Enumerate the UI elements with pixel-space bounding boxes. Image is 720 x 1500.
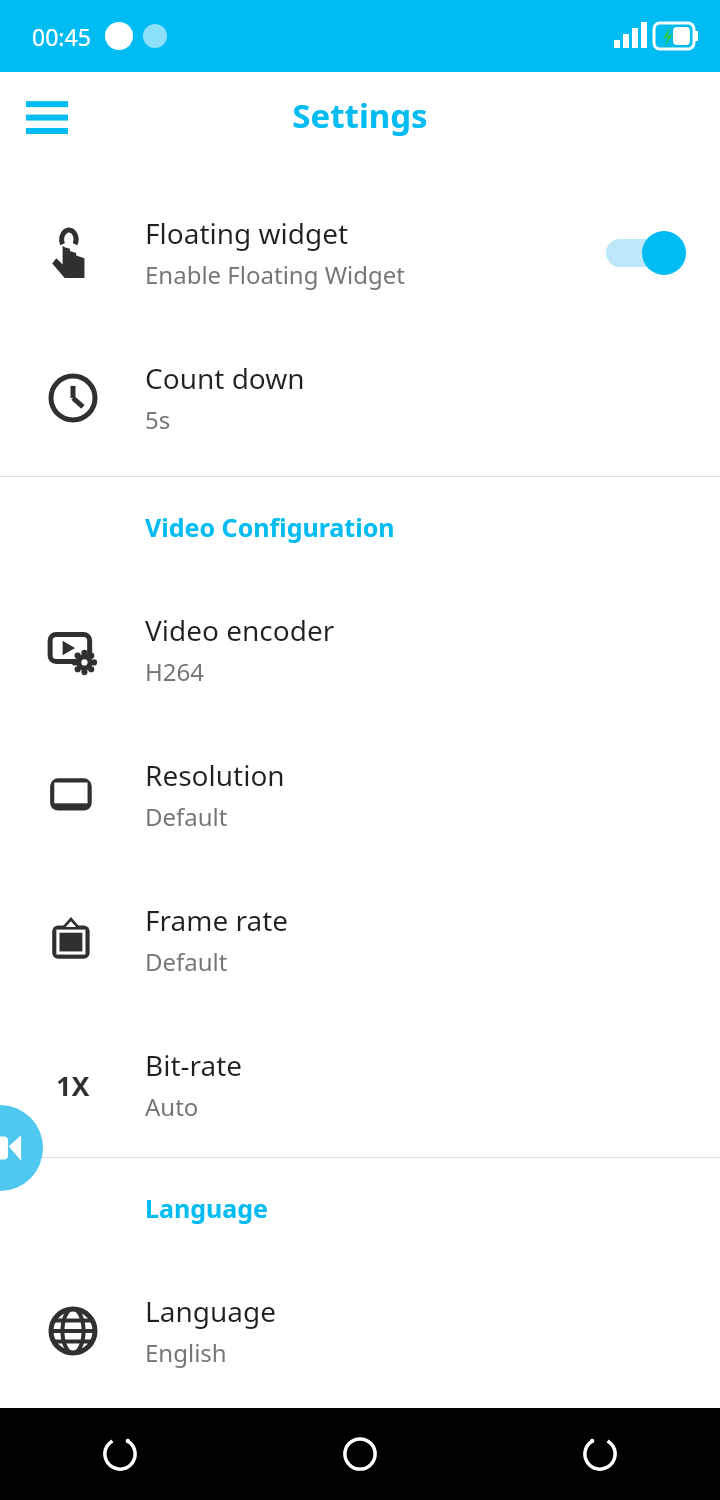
button[interactable]: Home: [240, 1408, 480, 1500]
staticText: Video Configuration: [145, 510, 395, 544]
staticText: Settings: [292, 93, 428, 138]
staticText: Floating widget: [145, 214, 349, 252]
staticText: Frame rate: [145, 901, 289, 939]
staticText: Language: [145, 1191, 268, 1225]
button[interactable]: 1X: [0, 1012, 720, 1157]
button[interactable]: Menu: [14, 82, 80, 148]
staticText: Resolution: [145, 756, 285, 794]
button[interactable]: Video encoder: [0, 577, 720, 722]
staticText: English: [145, 1336, 227, 1369]
button[interactable]: Floating widget: [0, 180, 720, 325]
button[interactable]: Floating widget toggle: [604, 231, 688, 275]
button[interactable]: Language: [0, 1258, 720, 1403]
staticText: 1X: [56, 1067, 90, 1104]
button[interactable]: Record video: [0, 1105, 43, 1191]
staticText: Default: [145, 800, 228, 833]
button[interactable]: Frame rate: [0, 867, 720, 1012]
staticText: Language: [145, 1292, 276, 1330]
button[interactable]: Resolution: [0, 722, 720, 867]
staticText: H264: [145, 655, 204, 688]
staticText: 00:45: [32, 21, 91, 52]
staticText: 5s: [145, 403, 171, 436]
button[interactable]: Recents: [480, 1408, 720, 1500]
staticText: Default: [145, 945, 228, 978]
button[interactable]: Back: [0, 1408, 240, 1500]
staticText: Video encoder: [145, 611, 335, 649]
staticText: Auto: [145, 1090, 199, 1123]
staticText: Bit-rate: [145, 1046, 243, 1084]
staticText: Enable Floating Widget: [145, 258, 405, 291]
staticText: Count down: [145, 359, 305, 397]
button[interactable]: Count down: [0, 325, 720, 470]
